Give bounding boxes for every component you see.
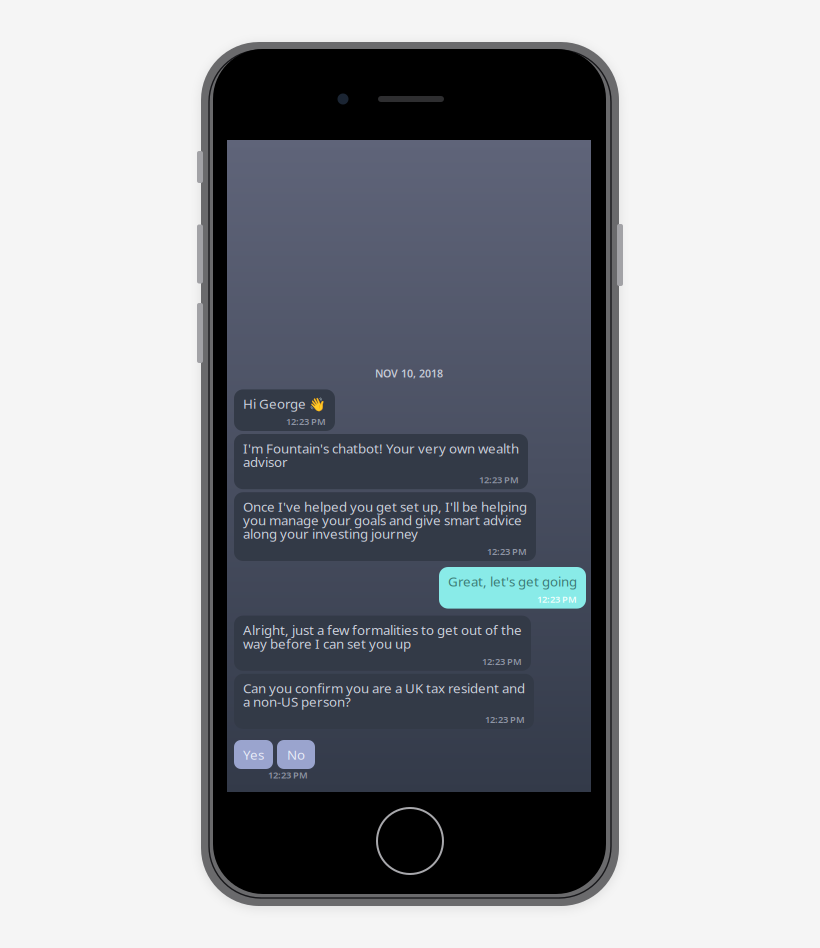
staticText: Alright, just a few formalities to get o… <box>243 621 522 639</box>
button[interactable]: Can you confirm you are a UK tax residen… <box>234 674 534 729</box>
staticText: Once I've helped you get set up, I'll be… <box>243 498 527 515</box>
button[interactable]: Yes <box>234 740 273 769</box>
staticText: a non-US person? <box>243 693 351 710</box>
staticText: along your investing journey <box>243 525 418 542</box>
staticText: 12:23 PM <box>286 415 326 428</box>
staticText: 12:23 PM <box>487 545 527 558</box>
staticText: 12:23 PM <box>485 713 525 726</box>
staticText: No <box>287 746 305 763</box>
staticText: Hi George 👋 <box>243 395 326 412</box>
staticText: Can you confirm you are a UK tax residen… <box>243 679 525 697</box>
staticText: advisor <box>243 453 288 471</box>
button[interactable]: Great, let's get going <box>439 567 586 609</box>
button[interactable]: Alright, just a few formalities to get o… <box>234 616 531 671</box>
button[interactable]: I'm Fountain's chatbot! Your very own we… <box>234 434 528 489</box>
button[interactable]: No <box>277 740 315 769</box>
button[interactable]: Hi George 👋 <box>234 389 335 431</box>
staticText: 12:23 PM <box>482 655 522 667</box>
staticText: you manage your goals and give smart adv… <box>243 511 522 529</box>
staticText: 12:23 PM <box>537 593 577 605</box>
staticText: 12:23 PM <box>479 473 519 486</box>
staticText: Yes <box>243 746 264 763</box>
staticText: Great, let's get going <box>448 572 577 590</box>
staticText: NOV 10, 2018 <box>375 366 443 380</box>
button[interactable]: Once I've helped you get set up, I'll be… <box>234 492 536 561</box>
staticText: way before I can set you up <box>243 635 411 652</box>
staticText: 12:23 PM <box>268 769 308 781</box>
staticText: I'm Fountain's chatbot! Your very own we… <box>243 439 519 457</box>
